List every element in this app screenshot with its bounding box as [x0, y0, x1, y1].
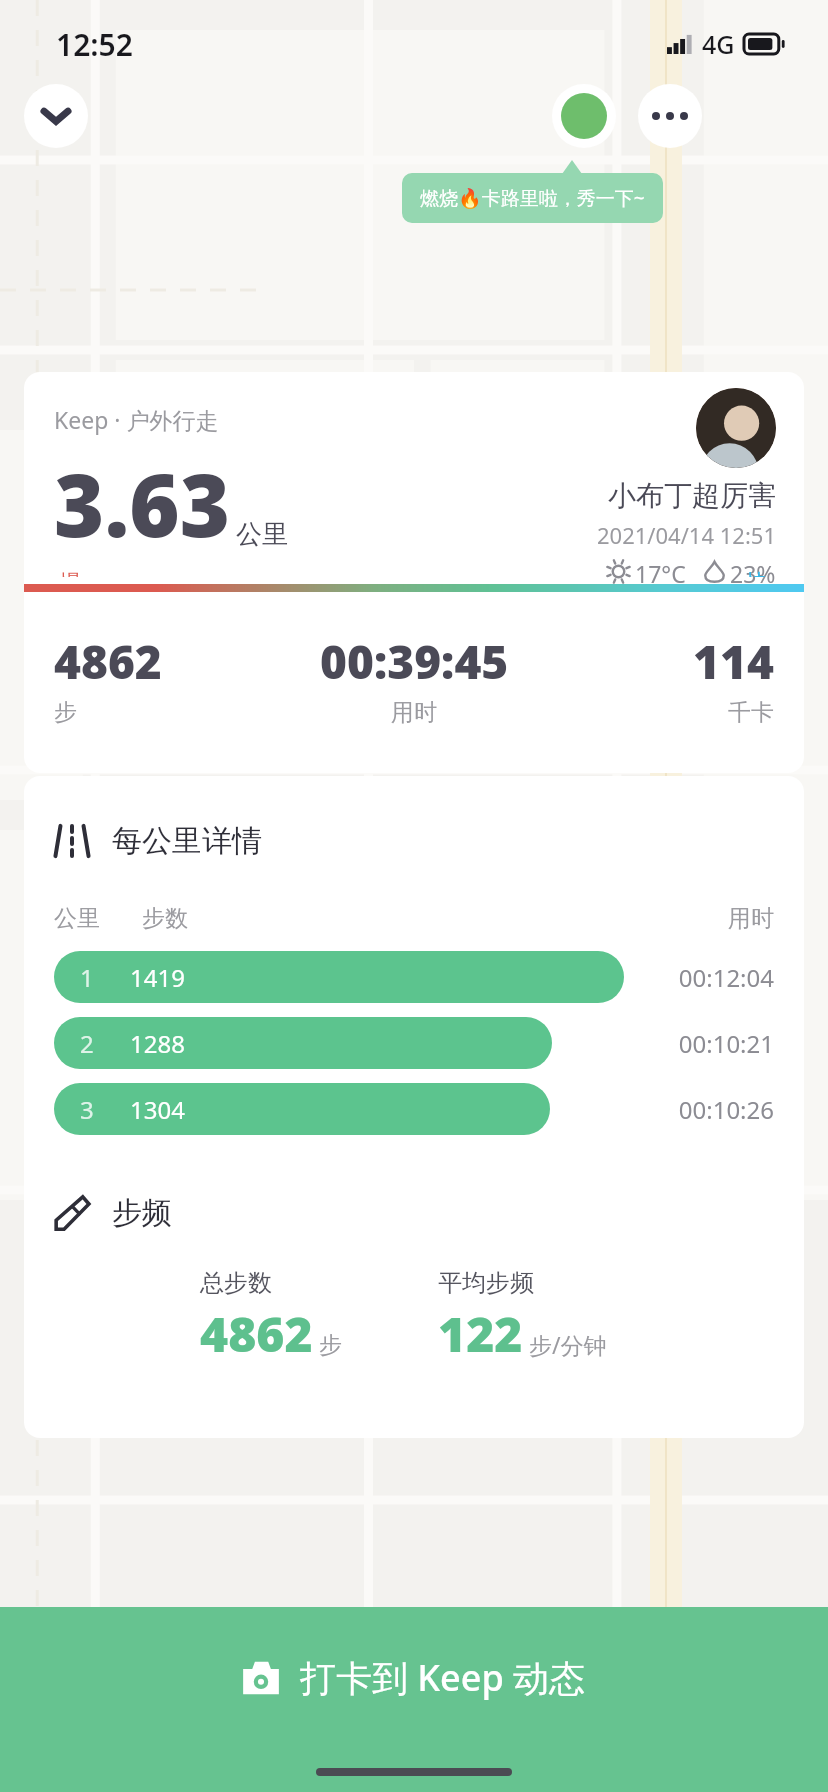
staticText: 步频: [112, 1194, 172, 1232]
staticText: 公里: [54, 904, 100, 933]
staticText: 3.63: [54, 445, 231, 562]
staticText: 燃烧🔥卡路里啦，秀一下~: [420, 185, 645, 211]
staticText: 4862: [54, 630, 162, 693]
staticText: 00:12:04: [642, 961, 774, 994]
staticText: 步: [54, 698, 77, 727]
button[interactable]: Collapse: [24, 84, 88, 148]
button[interactable]: 1: [54, 951, 624, 1003]
staticText: 小布丁超厉害: [608, 478, 776, 513]
button[interactable]: 2: [54, 1017, 552, 1069]
staticText: 打卡到 Keep 动态: [300, 1653, 586, 1702]
staticText: 1304: [130, 1093, 185, 1126]
button[interactable]: Profile photo: [696, 388, 776, 468]
staticText: 步/分钟: [529, 1329, 607, 1360]
staticText: 千卡: [728, 698, 774, 727]
staticText: 23%: [730, 558, 776, 584]
staticText: 00:39:45: [320, 630, 509, 693]
staticText: 慢: [60, 569, 82, 577]
button[interactable]: 步频: [24, 1148, 804, 1438]
staticText: 122: [438, 1301, 523, 1366]
staticText: 快: [746, 569, 768, 577]
staticText: 步数: [142, 904, 188, 933]
staticText: 4862: [200, 1301, 313, 1366]
staticText: 3: [80, 1093, 94, 1126]
button[interactable]: 3: [54, 1083, 550, 1135]
staticText: 每公里详情: [112, 822, 262, 860]
button[interactable]: Locate me: [552, 84, 616, 148]
staticText: 4G: [702, 27, 735, 61]
staticText: 12:52: [56, 24, 133, 65]
button[interactable]: Keep · 户外行走: [24, 372, 804, 773]
staticText: 步: [319, 1331, 342, 1360]
staticText: 2: [80, 1027, 94, 1060]
button[interactable]: 燃烧🔥卡路里啦，秀一下~: [402, 173, 663, 223]
staticText: 总步数: [200, 1268, 272, 1298]
staticText: 00:10:26: [642, 1093, 774, 1126]
button[interactable]: 打卡到 Keep 动态: [0, 1607, 828, 1792]
staticText: 00:10:21: [642, 1027, 774, 1060]
staticText: 114: [693, 630, 774, 693]
staticText: 用时: [728, 904, 774, 933]
staticText: 1: [80, 961, 94, 994]
staticText: Keep · 户外行走: [54, 404, 219, 435]
staticText: 用时: [391, 698, 437, 727]
staticText: 1288: [130, 1027, 185, 1060]
button[interactable]: More options: [638, 84, 702, 148]
button[interactable]: 每公里详情: [24, 776, 804, 1181]
staticText: 17°C: [635, 558, 686, 584]
staticText: 公里: [236, 518, 288, 551]
staticText: 1419: [130, 961, 185, 994]
staticText: 平均步频: [438, 1268, 534, 1298]
staticText: 2021/04/14 12:51: [597, 520, 776, 550]
